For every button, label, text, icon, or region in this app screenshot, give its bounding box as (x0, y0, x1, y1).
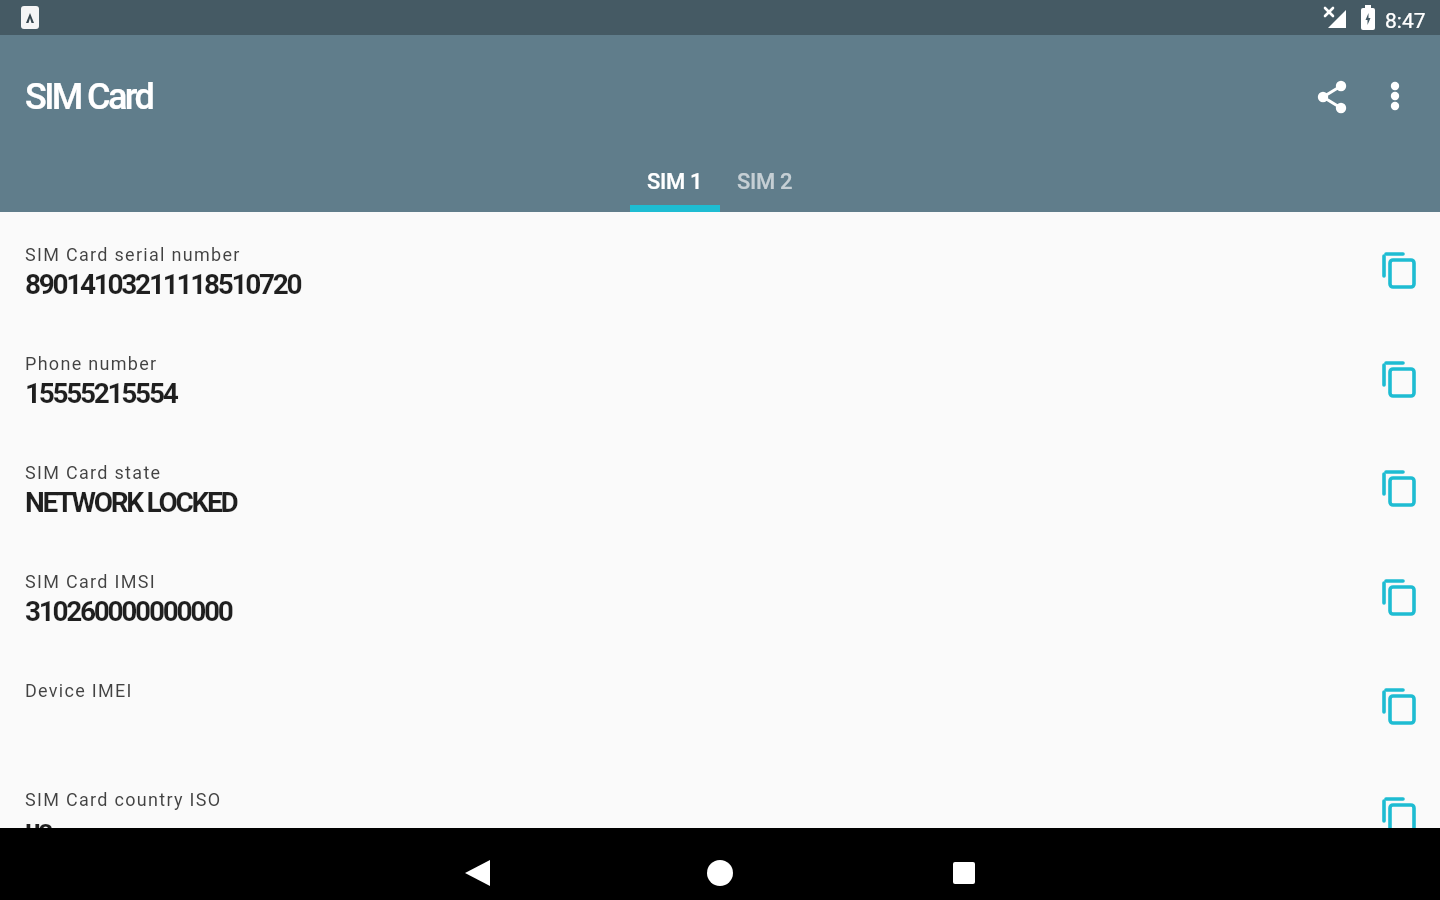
button[interactable] (1380, 577, 1418, 615)
staticText: SIM Card IMSI (25, 571, 156, 592)
button[interactable]: SIM 1 (630, 152, 720, 212)
button[interactable] (1380, 686, 1418, 724)
button[interactable] (1367, 68, 1423, 124)
button[interactable]: Phone number (0, 321, 1440, 430)
staticText: NETWORK LOCKED (25, 486, 237, 519)
staticText: SIM Card serial number (25, 244, 241, 265)
staticText: Phone number (25, 353, 158, 374)
staticText: SIM Card country ISO (25, 789, 222, 810)
staticText: us (25, 813, 51, 828)
staticText: SIM Card state (25, 462, 162, 483)
button[interactable]: SIM Card IMSI (0, 539, 1440, 648)
staticText: 8:47 (1385, 9, 1426, 34)
button[interactable] (450, 850, 506, 896)
button[interactable] (692, 850, 748, 896)
button[interactable]: SIM Card serial number (0, 212, 1440, 321)
button[interactable] (1305, 68, 1361, 124)
staticText: SIM 1 (647, 169, 703, 195)
button[interactable] (1380, 468, 1418, 506)
staticText: 15555215554 (25, 377, 177, 410)
button[interactable]: SIM Card state (0, 430, 1440, 539)
button[interactable] (1380, 359, 1418, 397)
button[interactable] (936, 850, 992, 896)
staticText: Device IMEI (25, 680, 133, 701)
button[interactable] (1380, 795, 1418, 828)
button[interactable]: SIM Card country ISO (0, 757, 1440, 828)
staticText: 89014103211118510720 (25, 268, 301, 301)
button[interactable]: SIM 2 (720, 152, 810, 212)
staticText: SIM 2 (737, 169, 793, 195)
button[interactable] (1380, 250, 1418, 288)
button[interactable]: Device IMEI (0, 648, 1440, 757)
staticText: SIM Card (25, 76, 153, 118)
staticText: 310260000000000 (25, 595, 232, 628)
